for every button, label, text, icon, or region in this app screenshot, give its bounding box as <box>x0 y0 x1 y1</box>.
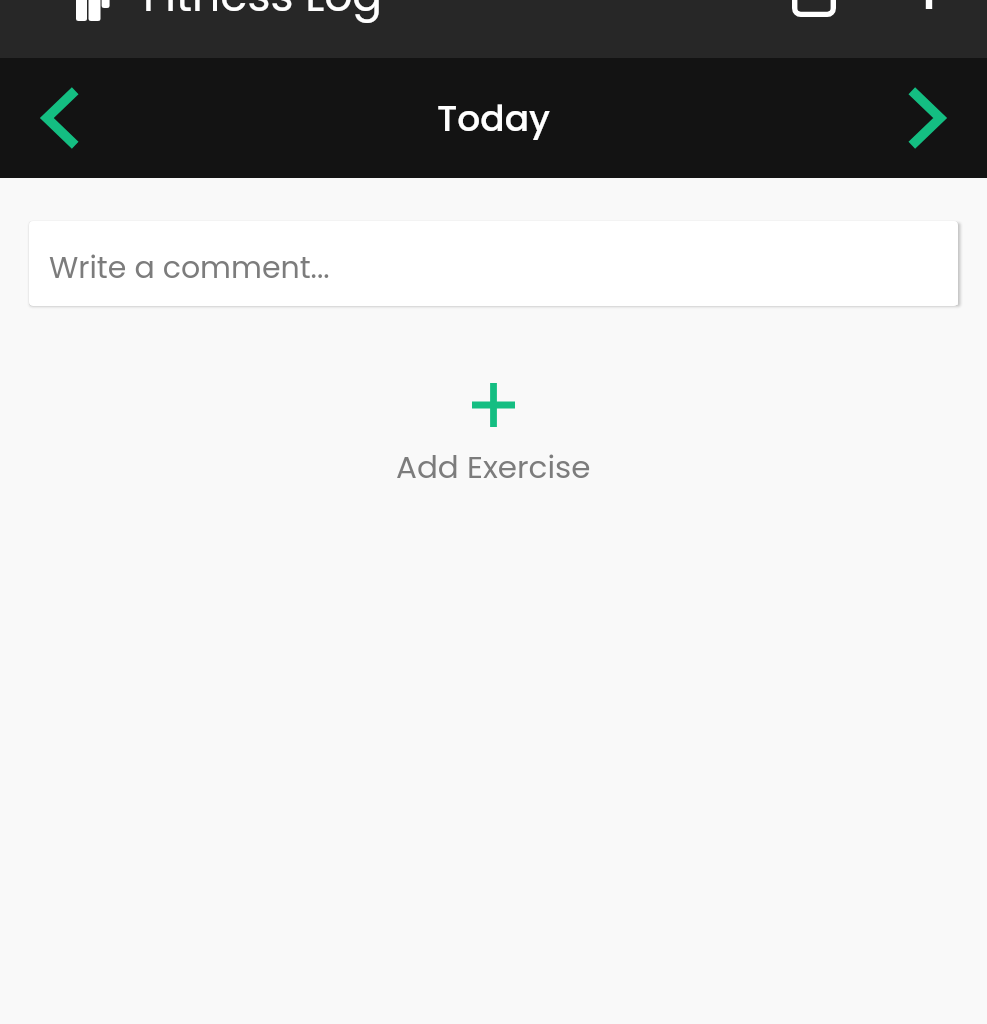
staticText: Today <box>437 93 551 143</box>
button[interactable]: Next day <box>886 78 966 158</box>
button[interactable]: Add <box>901 0 957 17</box>
button[interactable]: Previous day <box>21 78 101 158</box>
button[interactable]: Write a comment... <box>29 221 958 306</box>
staticText: Add Exercise <box>396 445 591 488</box>
other: Fitness Log <box>76 0 112 21</box>
staticText: Write a comment... <box>49 247 330 289</box>
staticText: Fitness Log <box>143 0 383 23</box>
button[interactable]: Calendar <box>786 0 842 23</box>
button[interactable]: Add Exercise <box>378 383 609 488</box>
